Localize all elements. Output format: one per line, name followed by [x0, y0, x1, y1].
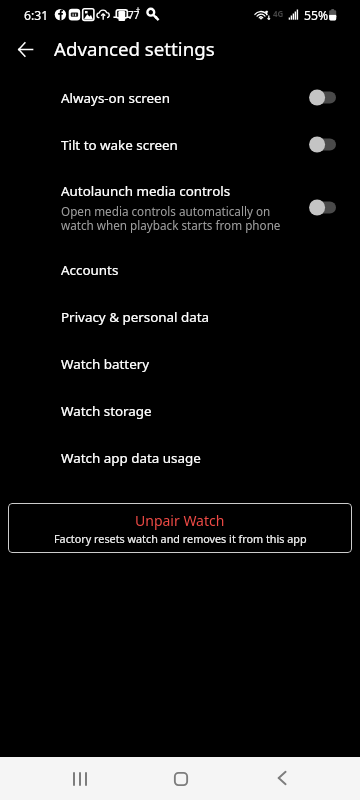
button[interactable]: Always-on screen [0, 74, 360, 121]
staticText: Autolaunch media controls [61, 182, 231, 200]
button[interactable]: Back [262, 758, 302, 798]
button[interactable]: Toggle [305, 136, 336, 153]
button[interactable]: Back [9, 33, 41, 65]
staticText: 6:31 [24, 7, 49, 24]
button[interactable]: Accounts [0, 246, 360, 293]
staticText: 55% [304, 7, 329, 24]
button[interactable]: Home [161, 759, 201, 799]
staticText: Factory resets watch and removes it from… [54, 531, 307, 546]
staticText: Privacy & personal data [61, 308, 210, 326]
staticText: 4G [273, 8, 284, 19]
staticText: Always-on screen [61, 89, 170, 107]
button[interactable]: Unpair Watch [8, 503, 352, 553]
staticText: Advanced settings [54, 36, 215, 61]
staticText: Tilt to wake screen [61, 136, 178, 154]
button[interactable]: Privacy & personal data [0, 293, 360, 340]
button[interactable]: Recents [59, 759, 99, 799]
staticText: Open media controls automatically on wat… [61, 203, 281, 233]
staticText: + [136, 5, 141, 15]
button[interactable]: Toggle [305, 89, 336, 106]
staticText: Watch storage [61, 402, 152, 420]
staticText: Watch battery [61, 355, 150, 373]
button[interactable]: Watch storage [0, 387, 360, 434]
button[interactable]: Autolaunch media controls [0, 168, 360, 246]
staticText: 77 [128, 8, 140, 22]
staticText: Unpair Watch [135, 511, 225, 530]
button[interactable]: Watch battery [0, 340, 360, 387]
button[interactable]: Tilt to wake screen [0, 121, 360, 168]
staticText: Accounts [61, 261, 119, 279]
button[interactable]: Watch app data usage [0, 434, 360, 481]
button[interactable]: Toggle [305, 199, 336, 216]
staticText: Watch app data usage [61, 449, 201, 467]
